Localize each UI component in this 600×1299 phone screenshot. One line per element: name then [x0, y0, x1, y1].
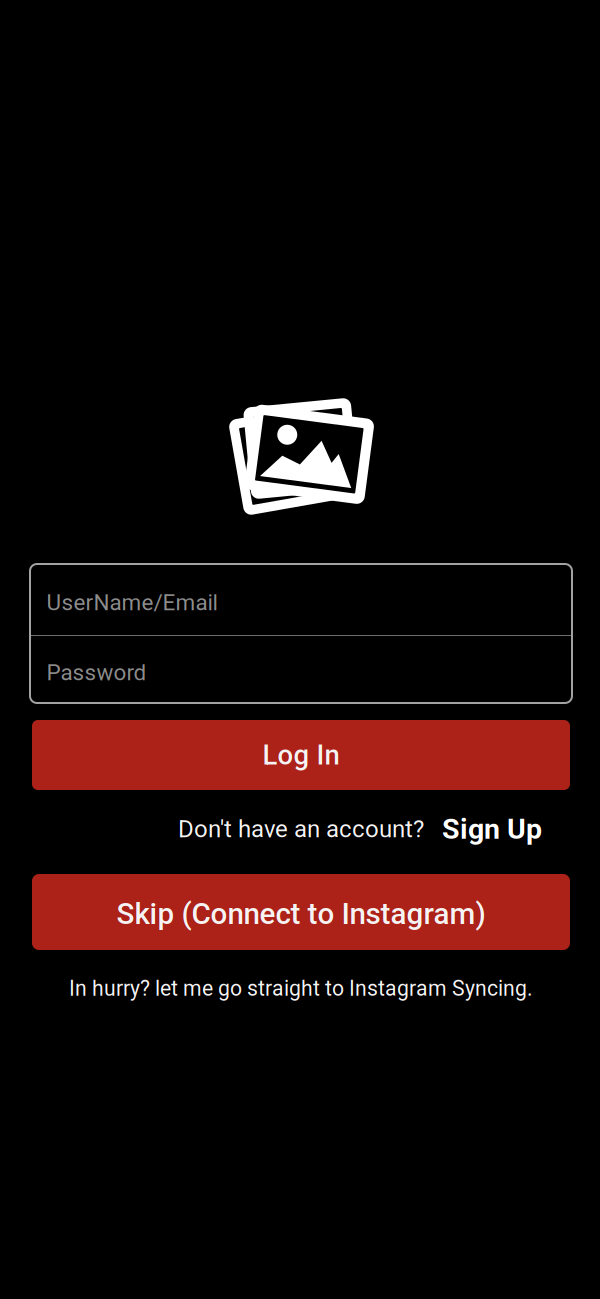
- button[interactable]: Log In: [32, 720, 570, 790]
- staticText: Password: [46, 659, 146, 686]
- staticText: Skip (Connect to Instagram): [116, 897, 485, 931]
- button[interactable]: Skip (Connect to Instagram): [32, 874, 570, 950]
- staticText: Don't have an account?: [178, 815, 424, 843]
- staticText: Sign Up: [442, 812, 542, 846]
- staticText: Log In: [262, 739, 339, 771]
- staticText: In hurry? let me go straight to Instagra…: [69, 976, 533, 1001]
- staticText: UserName/Email: [46, 589, 217, 616]
- button[interactable]: Sign Up: [442, 812, 542, 846]
